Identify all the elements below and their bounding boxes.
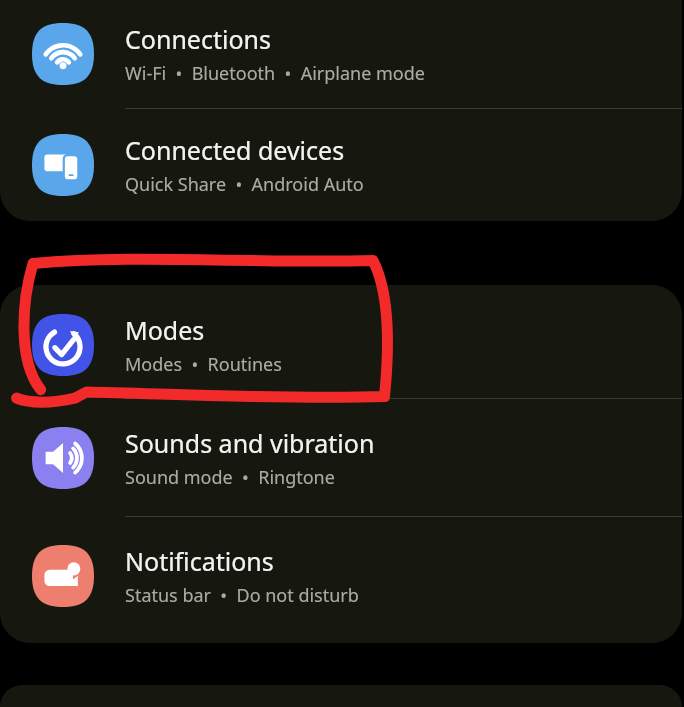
button[interactable]: Modes bbox=[0, 292, 682, 398]
staticText: Modes • Routines bbox=[125, 352, 282, 377]
staticText: Quick Share • Android Auto bbox=[125, 172, 364, 197]
staticText: Connections bbox=[125, 22, 271, 56]
staticText: Notifications bbox=[125, 544, 274, 578]
staticText: Sound mode • Ringtone bbox=[125, 465, 335, 490]
button[interactable]: Connected devices bbox=[0, 109, 682, 221]
button[interactable]: Sounds and vibration bbox=[0, 399, 682, 516]
staticText: Wi-Fi • Bluetooth • Airplane mode bbox=[125, 61, 425, 86]
staticText: Sounds and vibration bbox=[125, 426, 375, 460]
button[interactable]: Notifications bbox=[0, 517, 682, 634]
staticText: Modes bbox=[125, 313, 205, 347]
staticText: Status bar • Do not disturb bbox=[125, 583, 359, 608]
button[interactable]: Connections bbox=[0, 0, 682, 108]
staticText: Connected devices bbox=[125, 133, 345, 167]
